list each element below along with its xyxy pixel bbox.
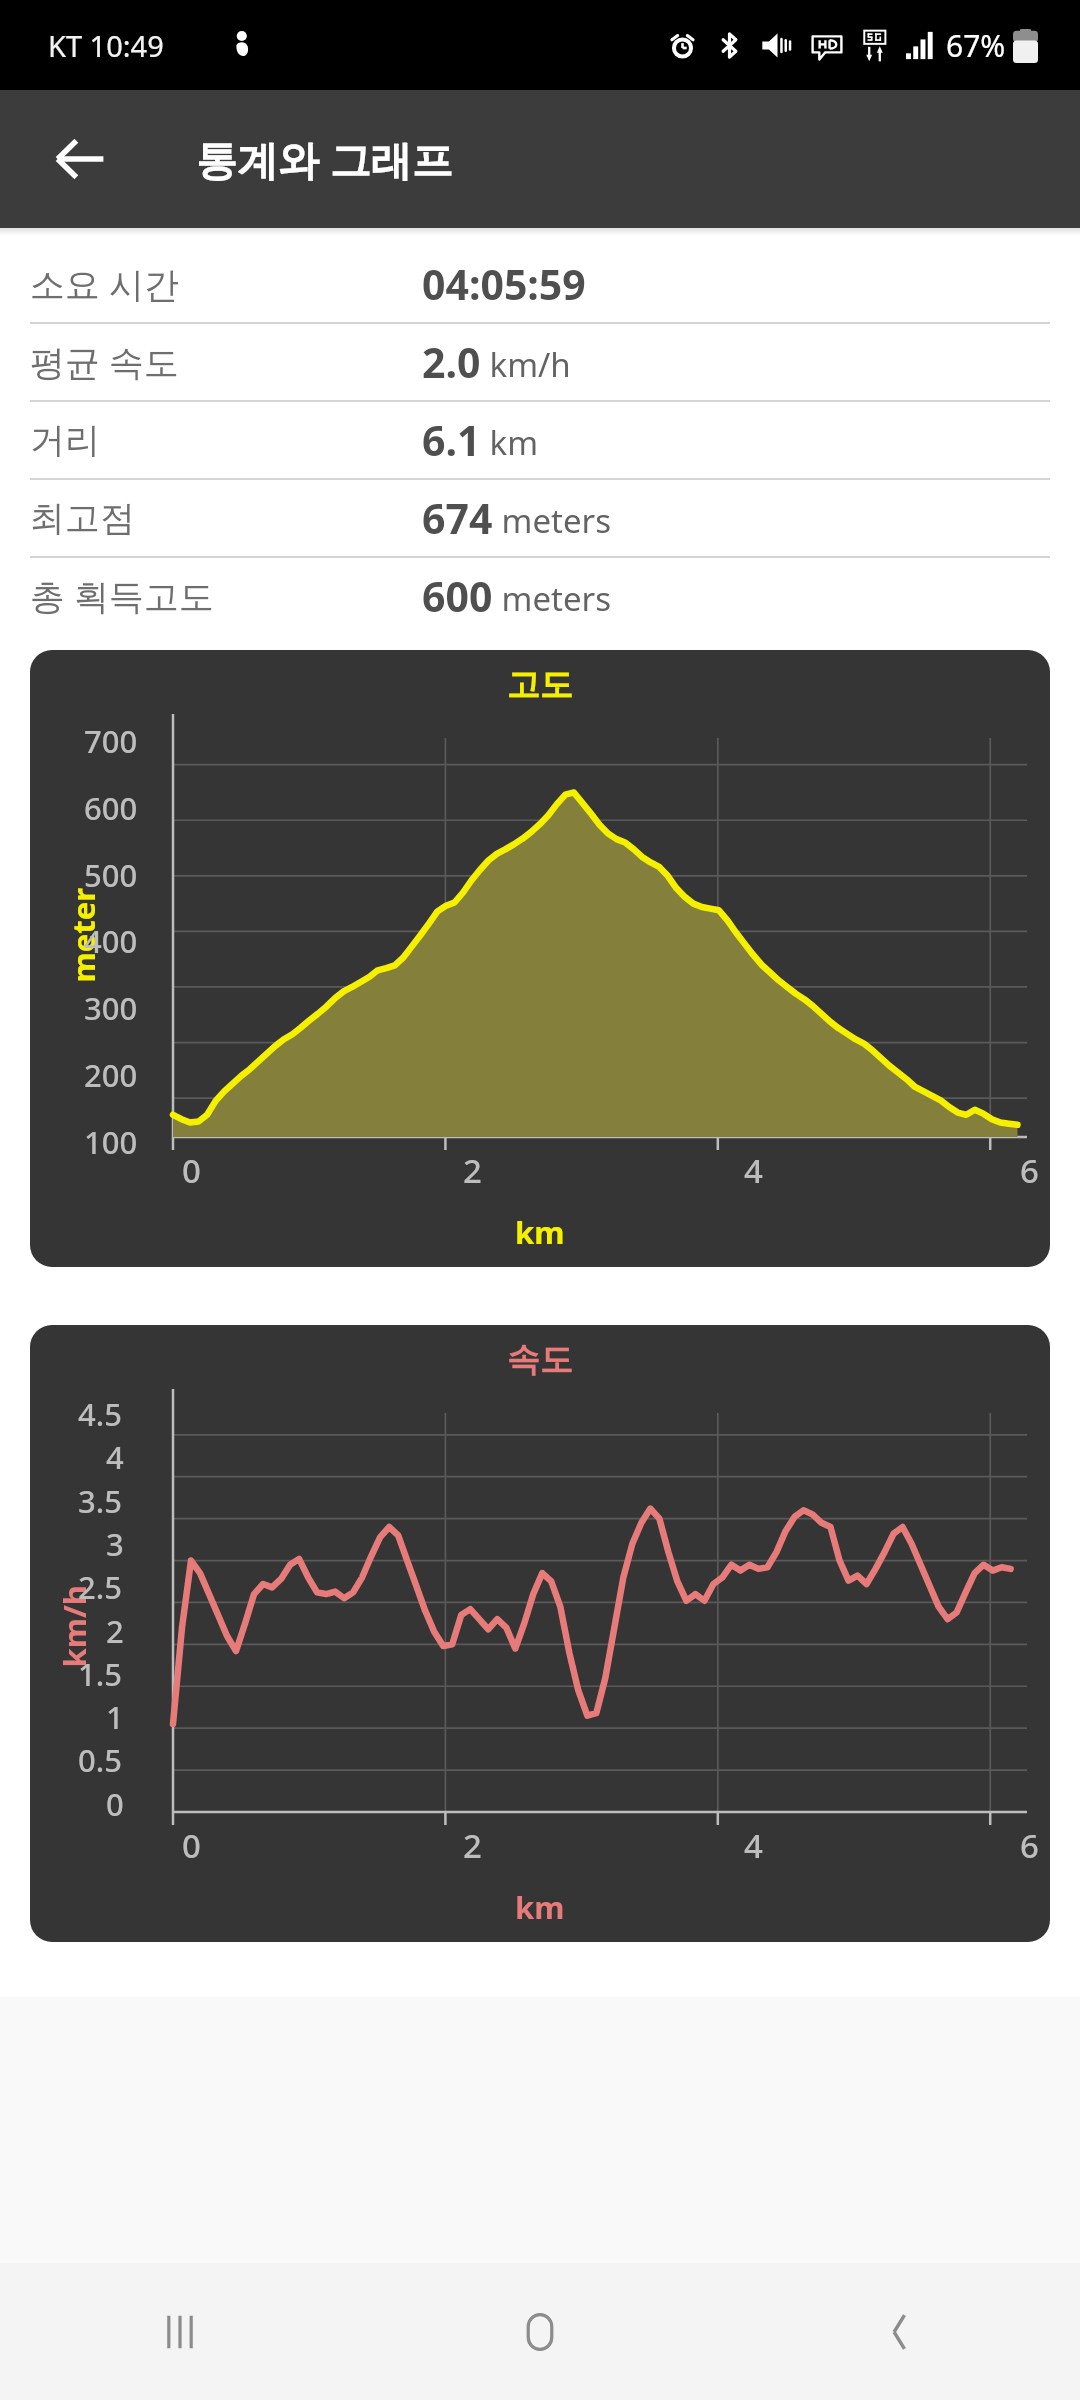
staticText: 최고점 <box>30 496 422 540</box>
staticText: 700 <box>84 720 138 762</box>
staticText: 6 <box>1020 1823 1039 1868</box>
staticText: 600 <box>84 787 138 829</box>
staticText: km/h <box>481 342 571 387</box>
staticText: 0.5 <box>78 1739 122 1781</box>
staticText: 300 <box>84 987 138 1029</box>
staticText: 1 <box>106 1696 124 1738</box>
button[interactable]: 최고점 <box>0 480 1080 556</box>
staticText: 6.1 <box>422 412 481 468</box>
button[interactable]: Back <box>26 105 134 213</box>
button[interactable]: 소요 시간 <box>0 246 1080 322</box>
staticText: 3 <box>106 1523 124 1565</box>
staticText: 속도 <box>507 1339 573 1381</box>
staticText: 674 <box>422 490 493 546</box>
staticText: 3.5 <box>78 1480 122 1522</box>
staticText: 통계와 그래프 <box>196 131 453 187</box>
staticText: 4 <box>744 1823 763 1868</box>
staticText: km <box>515 1886 565 1928</box>
staticText: 2 <box>106 1610 124 1652</box>
staticText: km <box>515 1211 565 1253</box>
staticText: 67% <box>946 25 1006 66</box>
button[interactable]: Back <box>720 2263 1080 2400</box>
button[interactable]: 속도 <box>30 1325 1050 1942</box>
staticText: 2.0 <box>422 334 481 390</box>
staticText: 200 <box>84 1054 138 1096</box>
staticText: meters <box>493 498 612 543</box>
staticText: 소요 시간 <box>30 260 422 308</box>
button[interactable]: Recent apps <box>0 2263 360 2400</box>
staticText: 총 획득고도 <box>30 572 422 620</box>
staticText: 2.5 <box>78 1566 122 1608</box>
staticText: 4 <box>106 1436 124 1478</box>
staticText: 04:05:59 <box>422 256 586 312</box>
staticText: 400 <box>84 920 138 962</box>
staticText: km <box>481 420 539 465</box>
button[interactable]: Home <box>360 2263 720 2400</box>
button[interactable]: 총 획득고도 <box>0 558 1080 634</box>
staticText: 0 <box>182 1148 201 1193</box>
staticText: 2 <box>463 1823 482 1868</box>
staticText: 2 <box>463 1148 482 1193</box>
staticText: 500 <box>84 854 138 896</box>
staticText: 고도 <box>507 664 573 706</box>
staticText: 0 <box>106 1783 124 1825</box>
staticText: 4 <box>744 1148 763 1193</box>
staticText: 거리 <box>30 418 422 462</box>
staticText: 0 <box>182 1823 201 1868</box>
staticText: 600 <box>422 568 493 624</box>
staticText: meters <box>493 576 612 621</box>
staticText: 1.5 <box>78 1653 122 1695</box>
staticText: 4.5 <box>78 1393 122 1435</box>
staticText: meter <box>61 887 103 982</box>
button[interactable]: 거리 <box>0 402 1080 478</box>
staticText: 100 <box>84 1121 138 1163</box>
staticText: km/h <box>52 1584 94 1667</box>
staticText: 6 <box>1020 1148 1039 1193</box>
staticText: KT 10:49 <box>48 26 164 65</box>
button[interactable]: 평균 속도 <box>0 324 1080 400</box>
button[interactable]: 고도 <box>30 650 1050 1267</box>
staticText: 평균 속도 <box>30 338 422 386</box>
